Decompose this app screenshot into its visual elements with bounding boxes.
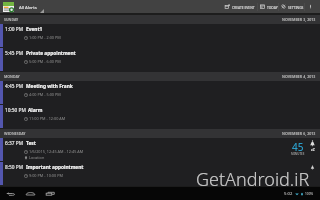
staticText: NOVEMBER 6, 2013 <box>282 131 316 136</box>
button[interactable]: CREATE EVENT <box>225 0 255 13</box>
button[interactable]: 4:45 PM <box>0 81 320 105</box>
staticText: NOVEMBER 4, 2013 <box>282 74 316 79</box>
staticText: Meeting with Frank <box>26 83 73 90</box>
button[interactable]: More options <box>305 0 315 13</box>
button[interactable]: TODAY <box>260 0 278 13</box>
staticText: Private appointment <box>26 50 76 57</box>
staticText: 4:00 PM - 5:00 PM <box>29 92 61 97</box>
staticText: All Alerts <box>19 4 37 10</box>
staticText: MINUTES <box>291 152 305 156</box>
staticText: SUNDAY <box>4 17 19 22</box>
button[interactable]: 6:37 PM <box>0 138 320 162</box>
staticText: MONDAY <box>4 74 20 79</box>
button[interactable]: Home <box>25 187 36 200</box>
button[interactable]: 1:00 PM <box>0 24 320 48</box>
staticText: 1:00 PM - 2:00 PM <box>29 35 61 40</box>
staticText: TODAY <box>267 5 278 9</box>
staticText: 1:00 PM <box>5 26 24 33</box>
staticText: 8:50 PM <box>5 164 24 171</box>
staticText: WEDNESDAY <box>4 131 26 136</box>
staticText: 9:00 PM - 10:00 PM <box>29 173 63 178</box>
staticText: Test <box>26 140 36 147</box>
button[interactable]: 5:45 PM <box>0 48 320 72</box>
staticText: zZ <box>311 147 315 152</box>
staticText: 4:45 PM <box>5 83 24 90</box>
button[interactable]: Snooze reminder <box>309 140 316 152</box>
button[interactable]: Reminder <box>310 165 315 170</box>
button[interactable]: Back <box>5 187 16 200</box>
staticText: 5:00 PM - 6:00 PM <box>29 59 61 64</box>
staticText: SETTINGS <box>288 5 304 9</box>
staticText: Alarm <box>28 107 43 114</box>
staticText: 1/6/2015, 12:45 AM - 12:45 AM <box>29 149 84 154</box>
button[interactable]: Recents <box>45 187 56 200</box>
staticText: Location <box>29 155 45 160</box>
staticText: 5:02 <box>284 191 293 197</box>
staticText: 6:37 PM <box>5 140 24 147</box>
button[interactable]: SETTINGS <box>281 0 304 13</box>
button[interactable]: 8:50 PM <box>0 162 320 186</box>
staticText: Event1 <box>26 26 43 33</box>
button[interactable]: All Alerts <box>17 0 35 13</box>
button[interactable]: 10:50 PM <box>0 105 320 129</box>
staticText: 10:50 PM <box>5 107 26 114</box>
staticText: 45 <box>292 140 304 154</box>
staticText: Important appointment <box>26 164 84 171</box>
button[interactable]: App icon <box>3 2 14 12</box>
staticText: GetAndroid.iR <box>196 167 310 192</box>
staticText: NOVEMBER 3, 2013 <box>282 17 316 22</box>
staticText: CREATE EVENT <box>232 5 255 9</box>
staticText: 11:00 PM - 12:00 AM <box>29 116 66 121</box>
staticText: 100% <box>305 192 314 196</box>
staticText: 5:45 PM <box>5 50 24 57</box>
